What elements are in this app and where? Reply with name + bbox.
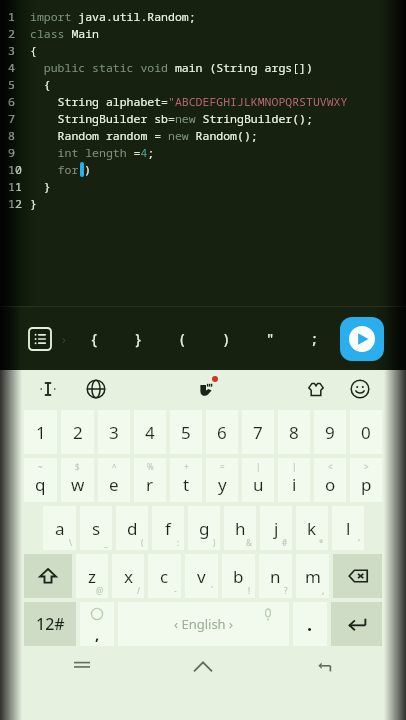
button[interactable]: Symbols xyxy=(80,602,114,646)
button[interactable]: h xyxy=(224,506,256,550)
staticText: / xyxy=(137,585,140,596)
staticText: › xyxy=(62,331,66,347)
staticText: 1 xyxy=(36,421,46,444)
staticText: { xyxy=(30,43,37,59)
button[interactable]: Text cursor xyxy=(32,373,64,405)
staticText: StringBuilder sb=new StringBuilder(); xyxy=(30,111,313,127)
button[interactable]: l xyxy=(332,506,364,550)
staticText: y xyxy=(218,473,227,496)
staticText: 6 xyxy=(217,421,227,444)
button[interactable]: + xyxy=(170,458,202,502)
button[interactable]: j xyxy=(260,506,292,550)
button[interactable]: Run xyxy=(340,317,384,361)
staticText: 1 xyxy=(8,9,15,25)
staticText: u xyxy=(253,473,264,496)
button[interactable]: x xyxy=(112,554,144,598)
button[interactable]: ‹ English › xyxy=(118,602,289,646)
button[interactable]: Recents xyxy=(22,652,142,678)
staticText: ' xyxy=(358,537,360,548)
button[interactable]: z xyxy=(76,554,108,598)
button[interactable]: ) xyxy=(204,307,248,370)
button[interactable]: b xyxy=(222,554,255,598)
button[interactable]: c xyxy=(148,554,181,598)
staticText: p xyxy=(361,473,372,496)
button[interactable]: 2 xyxy=(61,410,94,454)
staticText: 5 xyxy=(8,77,15,93)
staticText: ` xyxy=(211,585,214,596)
button[interactable]: k xyxy=(296,506,328,550)
staticText: _ xyxy=(104,537,108,548)
staticText: < xyxy=(328,461,333,472)
button[interactable]: | xyxy=(242,458,274,502)
button[interactable]: } xyxy=(116,307,160,370)
button[interactable]: d xyxy=(116,506,148,550)
button[interactable]: " xyxy=(248,307,292,370)
staticText: { xyxy=(90,329,99,348)
staticText: 0 xyxy=(361,421,371,444)
button[interactable]: { xyxy=(72,307,116,370)
button[interactable]: 9 xyxy=(314,410,346,454)
button[interactable]: Shift xyxy=(24,554,72,598)
button[interactable]: v xyxy=(185,554,218,598)
button[interactable]: 12# xyxy=(24,602,76,646)
staticText: ) xyxy=(222,329,231,348)
staticText: 10 xyxy=(8,162,22,178)
button[interactable]: Enter xyxy=(331,602,382,646)
button[interactable]: $ xyxy=(61,458,94,502)
button[interactable]: n xyxy=(259,554,292,598)
staticText: 12 xyxy=(8,196,22,212)
button[interactable]: = xyxy=(206,458,238,502)
button[interactable]: 3 xyxy=(98,410,130,454)
staticText: n xyxy=(270,565,281,588)
button[interactable]: a xyxy=(43,506,76,550)
staticText: ) xyxy=(84,162,91,178)
button[interactable]: File list xyxy=(22,321,58,357)
button[interactable]: ^ xyxy=(98,458,130,502)
staticText: 7 xyxy=(8,111,15,127)
staticText: * xyxy=(319,537,324,548)
staticText: String alphabet="ABCDEFGHIJLKMNOPQRSTUVW… xyxy=(30,94,348,110)
button[interactable]: Home xyxy=(142,652,263,678)
staticText: ? xyxy=(284,585,288,596)
button[interactable]: Themes xyxy=(300,373,332,405)
staticText: Random random = new Random(); xyxy=(30,128,258,144)
button[interactable]: ( xyxy=(160,307,204,370)
button[interactable]: Language xyxy=(80,373,112,405)
button[interactable]: 7 xyxy=(242,410,274,454)
staticText: 3 xyxy=(8,43,15,59)
staticText: ~ xyxy=(38,461,43,472)
button[interactable]: 0 xyxy=(350,410,382,454)
staticText: h xyxy=(235,517,246,540)
button[interactable]: f xyxy=(152,506,184,550)
staticText: % xyxy=(147,461,154,472)
button[interactable]: ~ xyxy=(24,458,57,502)
staticText: # xyxy=(282,537,288,548)
button[interactable]: | xyxy=(278,458,310,502)
button[interactable]: ; xyxy=(292,307,336,370)
button[interactable]: Back xyxy=(263,652,384,678)
button[interactable]: 1 xyxy=(24,410,57,454)
staticText: | xyxy=(256,461,261,472)
staticText: ! xyxy=(248,585,251,596)
button[interactable]: m xyxy=(296,554,329,598)
button[interactable]: > xyxy=(350,458,382,502)
button[interactable]: % xyxy=(134,458,166,502)
button[interactable]: Handwriting xyxy=(190,373,222,405)
button[interactable]: 5 xyxy=(170,410,202,454)
staticText: c xyxy=(160,565,169,588)
button[interactable]: < xyxy=(314,458,346,502)
button[interactable]: Backspace xyxy=(333,554,382,598)
button[interactable]: g xyxy=(188,506,220,550)
staticText: class Main xyxy=(30,26,99,42)
staticText: @ xyxy=(96,585,104,596)
button[interactable]: Emoji xyxy=(344,373,376,405)
button[interactable]: 6 xyxy=(206,410,238,454)
button[interactable]: 4 xyxy=(134,410,166,454)
staticText: 9 xyxy=(8,145,15,161)
staticText: i xyxy=(292,473,297,496)
button[interactable]: s xyxy=(80,506,112,550)
staticText: = xyxy=(220,461,225,472)
button[interactable]: 8 xyxy=(278,410,310,454)
staticText: r xyxy=(146,473,154,496)
button[interactable]: . xyxy=(293,602,327,646)
